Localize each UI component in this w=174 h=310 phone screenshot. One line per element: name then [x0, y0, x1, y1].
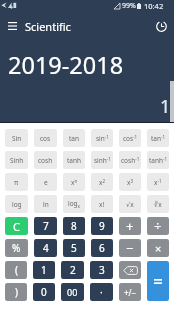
staticText: + — [126, 217, 134, 235]
staticText: ( — [15, 263, 18, 277]
staticText: 0 — [41, 285, 47, 299]
staticText: 5 — [71, 241, 77, 255]
staticText: Sinh — [10, 156, 24, 165]
staticText: 2019-2018 — [8, 49, 124, 81]
button[interactable]: % — [5, 239, 28, 257]
button[interactable]: cos-1 — [119, 129, 141, 147]
staticText: Scientific — [25, 19, 71, 34]
staticText: +/− — [124, 287, 137, 298]
staticText: · — [100, 285, 103, 299]
staticText: π — [14, 178, 19, 187]
staticText: ∛x — [154, 200, 162, 209]
button[interactable]: log — [5, 195, 28, 213]
button[interactable]: √x — [119, 195, 141, 213]
staticText: cosh-1 — [121, 156, 140, 165]
staticText: 3 — [99, 263, 105, 277]
staticText: x-1 — [154, 178, 162, 187]
staticText: x! — [99, 200, 105, 209]
staticText: logx — [68, 199, 80, 210]
button[interactable]: · — [90, 283, 113, 301]
staticText: ÷ — [154, 217, 162, 235]
button[interactable]: C — [5, 217, 28, 235]
staticText: % — [12, 241, 21, 255]
staticText: x2 — [99, 178, 106, 187]
staticText: × — [155, 241, 162, 256]
button[interactable]: x-1 — [147, 173, 169, 191]
button[interactable]: Menu — [0, 11, 25, 41]
staticText: 6 — [99, 241, 105, 255]
staticText: tanh — [67, 156, 82, 165]
button[interactable]: cos — [34, 129, 57, 147]
button[interactable]: tanh — [63, 151, 85, 169]
button[interactable]: tanh-1 — [147, 151, 169, 169]
staticText: 1 — [160, 94, 171, 119]
button[interactable]: π — [5, 173, 28, 191]
button[interactable]: tan — [63, 129, 85, 147]
button[interactable]: Sin — [5, 129, 28, 147]
staticText: tan-1 — [151, 134, 166, 143]
staticText: 10:42 — [144, 1, 164, 11]
button[interactable]: 3 — [90, 261, 113, 279]
staticText: 7 — [43, 219, 49, 233]
button[interactable]: cosh — [34, 151, 57, 169]
button[interactable]: x! — [91, 195, 113, 213]
button[interactable]: tan-1 — [147, 129, 169, 147]
button[interactable]: 7 — [34, 217, 57, 235]
button[interactable]: logx — [63, 195, 85, 213]
button[interactable]: 4 — [34, 239, 57, 257]
button[interactable]: ln — [34, 195, 57, 213]
staticText: sin-1 — [96, 134, 109, 143]
button[interactable]: 2 — [61, 261, 84, 279]
button[interactable]: xn — [63, 173, 85, 191]
button[interactable] — [147, 261, 169, 301]
button[interactable]: 00 — [61, 283, 84, 301]
button[interactable]: History — [148, 11, 174, 41]
staticText: ln — [43, 200, 49, 209]
button[interactable]: 5 — [63, 239, 85, 257]
staticText: xn — [71, 178, 78, 187]
staticText: cos-1 — [123, 134, 138, 143]
button[interactable]: Backspace — [119, 261, 141, 279]
button[interactable]: ( — [5, 261, 27, 279]
button[interactable]: ∛x — [147, 195, 169, 213]
staticText: tanh-1 — [149, 156, 168, 165]
staticText: x3 — [127, 178, 134, 187]
button[interactable]: sin-1 — [91, 129, 113, 147]
button[interactable]: 8 — [63, 217, 85, 235]
staticText: C — [13, 219, 20, 234]
button[interactable]: +/− — [119, 283, 141, 301]
button[interactable]: + — [119, 217, 141, 235]
button[interactable]: 9 — [91, 217, 113, 235]
staticText: − — [126, 239, 134, 257]
button[interactable]: Sinh — [5, 151, 28, 169]
button[interactable]: sinh-1 — [91, 151, 113, 169]
staticText: 99% — [122, 1, 136, 11]
staticText: ) — [15, 285, 18, 299]
staticText: √x — [126, 200, 134, 209]
button[interactable]: e — [34, 173, 57, 191]
staticText: log — [12, 200, 22, 209]
button[interactable]: cosh-1 — [119, 151, 141, 169]
button[interactable]: 1 — [33, 261, 55, 279]
staticText: Sin — [12, 134, 22, 143]
button[interactable]: x3 — [119, 173, 141, 191]
button[interactable]: ÷ — [147, 217, 169, 235]
staticText: sinh-1 — [94, 156, 111, 165]
staticText: cos — [40, 134, 51, 143]
staticText: 8 — [71, 219, 77, 233]
button[interactable]: x2 — [91, 173, 113, 191]
staticText: 1 — [41, 263, 47, 277]
button[interactable]: × — [147, 239, 169, 257]
staticText: cosh — [38, 156, 53, 165]
staticText: 2 — [70, 263, 76, 277]
staticText: tan — [69, 134, 80, 143]
button[interactable]: ) — [5, 283, 27, 301]
button[interactable]: 6 — [91, 239, 113, 257]
staticText: 4 — [43, 241, 49, 255]
button[interactable]: 0 — [33, 283, 55, 301]
staticText: 9 — [99, 219, 105, 233]
button[interactable]: − — [119, 239, 141, 257]
staticText: e — [44, 178, 48, 187]
staticText: 00 — [67, 286, 78, 298]
